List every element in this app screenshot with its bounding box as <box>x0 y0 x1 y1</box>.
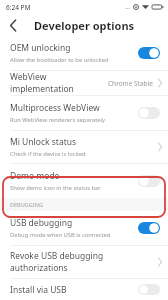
staticText: WebView implementation <box>10 71 108 95</box>
staticText: USB debugging <box>10 217 73 229</box>
staticText: Install via USB <box>10 284 67 295</box>
button[interactable]: Multiprocess WebView <box>0 96 168 130</box>
staticText: DEBUGGING <box>10 201 43 208</box>
staticText: ... <box>125 3 130 11</box>
staticText: Revoke USB debugging authorizations <box>10 250 152 274</box>
button[interactable]: WebView implementation <box>0 71 168 95</box>
staticText: Developer options <box>34 18 135 33</box>
button[interactable]: Back <box>0 14 26 36</box>
staticText: 6:24 PM <box>6 3 31 12</box>
button[interactable]: Install via USB <box>0 279 168 300</box>
staticText: Mi Unlock status <box>10 136 77 148</box>
staticText: Allow the bootloader to be unlocked <box>10 56 109 64</box>
button[interactable]: Mi Unlock status <box>0 131 168 163</box>
button[interactable]: OEM unlocking <box>0 36 168 70</box>
staticText: Check if the device is locked <box>10 150 86 158</box>
staticText: Chrome Stable <box>108 79 153 88</box>
staticText: Run WebView renderers separately <box>10 116 105 124</box>
staticText: Show demo icon in the status bar <box>10 184 101 192</box>
staticText: Debug mode when USB is connected <box>10 231 111 239</box>
staticText: Multiprocess WebView <box>10 102 100 114</box>
button[interactable]: Revoke USB debugging authorizations <box>0 246 168 278</box>
staticText: Demo mode <box>10 170 60 182</box>
button[interactable]: Demo mode <box>0 164 168 198</box>
staticText: OEM unlocking <box>10 42 71 54</box>
button[interactable]: USB debugging <box>0 211 168 245</box>
